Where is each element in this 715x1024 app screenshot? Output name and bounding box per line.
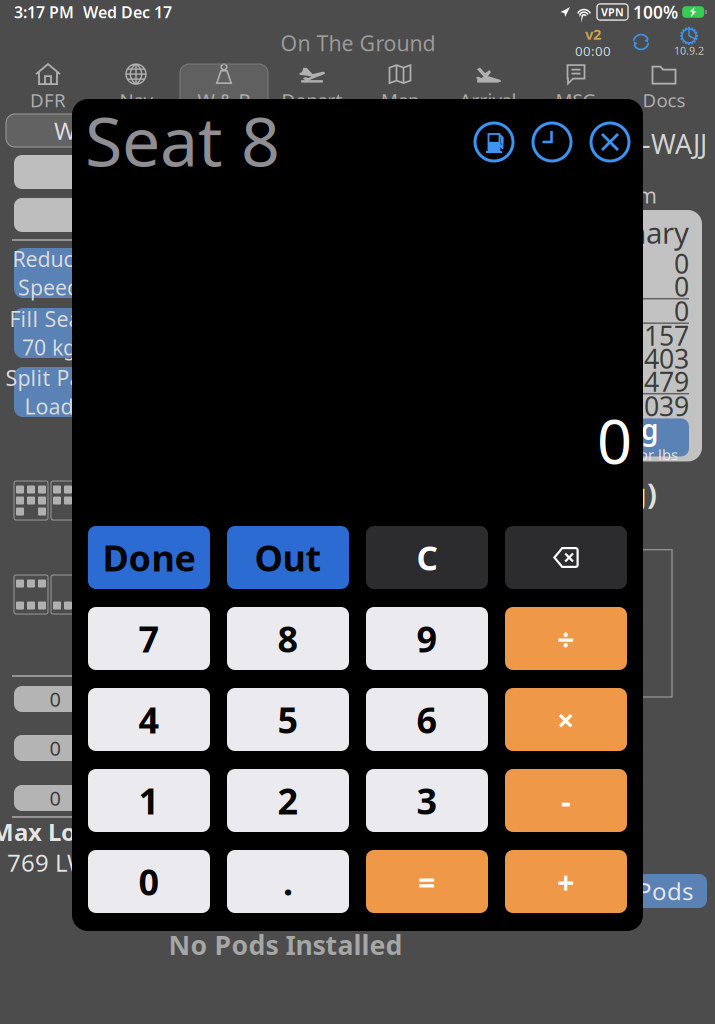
staticText: (kg): [600, 474, 657, 513]
staticText: 0: [674, 293, 689, 329]
staticText: 804 m: [595, 181, 657, 209]
staticText: No Pods Installed: [168, 927, 402, 962]
button[interactable]: WAJ.: [6, 114, 110, 147]
button[interactable]: 2: [227, 769, 349, 832]
button[interactable]: 8: [227, 607, 349, 670]
staticText: 0: [674, 269, 689, 304]
staticText: 0: [49, 735, 60, 761]
staticText: 100%: [633, 0, 678, 23]
staticText: Split Pax: [5, 364, 92, 392]
button[interactable]: Close: [590, 122, 630, 162]
button[interactable]: Map: [356, 64, 444, 110]
button[interactable]: .: [227, 850, 349, 913]
staticText: Fill Seat: [9, 305, 88, 333]
staticText: 8: [277, 615, 298, 662]
button[interactable]: Backspace: [505, 526, 627, 589]
staticText: 2039: [629, 388, 689, 424]
staticText: Wed Dec 17: [83, 1, 172, 23]
button[interactable]: =: [366, 850, 488, 913]
button[interactable]: Depart: [268, 64, 356, 110]
staticText: 3: [416, 777, 437, 824]
staticText: 157: [644, 318, 689, 353]
staticText: Arrival: [459, 88, 516, 112]
button[interactable]: 1: [88, 769, 210, 832]
staticText: 0: [49, 785, 60, 811]
staticText: WAJ.: [54, 115, 105, 146]
button[interactable]: Docs: [620, 64, 708, 110]
button[interactable]: 4: [88, 688, 210, 751]
staticText: 70 kg: [22, 333, 76, 361]
staticText: Out: [254, 534, 321, 581]
staticText: 10.9.2: [674, 43, 704, 58]
staticText: 00:00: [575, 42, 611, 60]
button[interactable]: Reduce: [14, 248, 84, 298]
staticText: Nav: [119, 88, 152, 112]
staticText: Tap for lbs: [606, 445, 678, 464]
staticText: 0: [138, 858, 159, 905]
button[interactable]: 6: [366, 688, 488, 751]
staticText: 1: [138, 777, 159, 824]
button[interactable]: DFR: [4, 64, 92, 110]
staticText: Reduce: [12, 245, 85, 273]
button[interactable]: C: [366, 526, 488, 589]
staticText: WAVA-WAJJ: [570, 126, 707, 161]
staticText: 7: [138, 615, 159, 662]
button[interactable]: Out: [227, 526, 349, 589]
staticText: 2: [277, 777, 298, 824]
staticText: 4: [138, 696, 159, 743]
button[interactable]: 5: [227, 688, 349, 751]
staticText: 0: [49, 686, 60, 712]
staticText: Seat 8: [85, 95, 280, 185]
button[interactable]: Done: [88, 526, 210, 589]
staticText: C: [416, 535, 437, 580]
button[interactable]: 7: [88, 607, 210, 670]
staticText: Speed: [18, 273, 80, 301]
staticText: 0: [674, 246, 689, 281]
button[interactable]: +: [505, 850, 627, 913]
button[interactable]: 3: [366, 769, 488, 832]
staticText: 0: [597, 400, 632, 481]
staticText: Pods: [637, 875, 693, 907]
staticText: Map: [381, 88, 419, 112]
staticText: DFR: [30, 88, 66, 112]
staticText: 6: [416, 696, 437, 743]
button[interactable]: ×: [505, 688, 627, 751]
staticText: 3:17 PM: [14, 1, 74, 23]
staticText: +: [557, 861, 575, 902]
button[interactable]: Settings: [665, 26, 713, 58]
staticText: Depart: [281, 88, 342, 112]
staticText: ×: [557, 699, 575, 740]
staticText: ÷: [557, 618, 575, 659]
staticText: Max Load: [0, 816, 105, 847]
staticText: MSG: [555, 88, 596, 112]
button[interactable]: 9: [366, 607, 488, 670]
button[interactable]: W & B: [180, 64, 268, 110]
button[interactable]: Nav: [92, 64, 180, 110]
button[interactable]: Fuel: [474, 122, 514, 162]
staticText: .: [283, 858, 293, 905]
button[interactable]: Arrival: [444, 64, 532, 110]
staticText: W & B: [197, 88, 250, 112]
button[interactable]: Fill Seat: [14, 308, 84, 358]
staticText: Load: [24, 392, 73, 420]
button[interactable]: Refresh: [617, 28, 665, 56]
button[interactable]: Pods: [590, 874, 707, 908]
staticText: On The Ground: [280, 29, 435, 57]
button[interactable]: kg: [595, 418, 689, 456]
staticText: kg: [625, 411, 659, 448]
staticText: 769 LW: [7, 846, 89, 878]
button[interactable]: ÷: [505, 607, 627, 670]
button[interactable]: MSG: [532, 64, 620, 110]
staticText: 403: [644, 341, 689, 376]
button[interactable]: -: [505, 769, 627, 832]
button[interactable]: Time: [532, 122, 572, 162]
staticText: -: [561, 780, 571, 821]
staticText: =: [418, 861, 436, 902]
button[interactable]: 0: [88, 850, 210, 913]
staticText: Done: [102, 534, 195, 581]
staticText: v2: [585, 24, 601, 44]
staticText: 1479: [629, 364, 689, 399]
staticText: 9: [416, 615, 437, 662]
staticText: Summary: [558, 213, 689, 252]
button[interactable]: Split Pax: [14, 367, 84, 417]
